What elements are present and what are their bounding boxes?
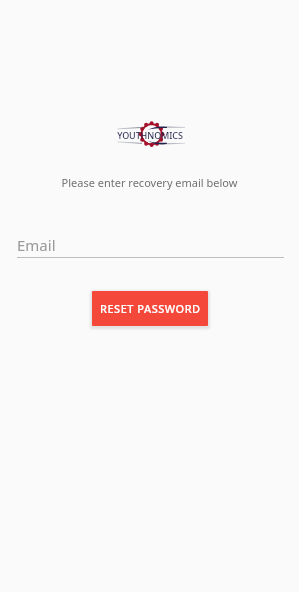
staticText: RESET PASSWORD [100,301,201,316]
button[interactable]: Email [17,235,284,258]
button[interactable]: RESET PASSWORD [92,291,208,326]
staticText: YOUTHNOMICS [117,129,183,141]
staticText: Please enter recovery email below [0,175,299,190]
other: Youthnomics logo [112,116,188,150]
staticText: Email [17,235,56,255]
